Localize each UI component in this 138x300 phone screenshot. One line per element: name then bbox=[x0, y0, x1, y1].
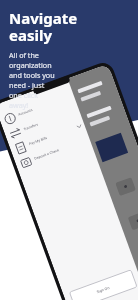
button[interactable] bbox=[0, 0, 138, 300]
button[interactable]: Navigate easily promotional banner bbox=[0, 0, 138, 300]
